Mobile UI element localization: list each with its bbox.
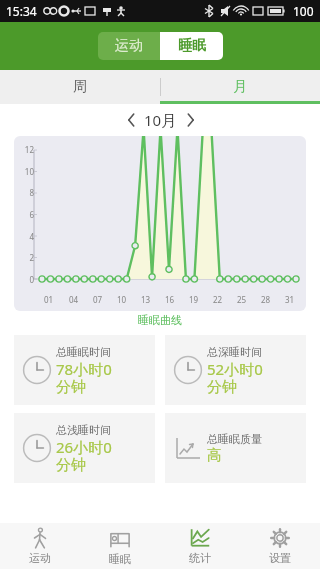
staticText: 15:34: [6, 3, 37, 19]
staticText: 总深睡时间: [207, 345, 262, 359]
staticText: 04: [69, 294, 79, 305]
button[interactable]: Previous month: [118, 107, 144, 133]
button[interactable]: Next month: [177, 107, 203, 133]
staticText: 月: [233, 78, 247, 96]
button[interactable]: 运动: [0, 523, 80, 569]
staticText: 19: [189, 294, 199, 305]
staticText: 22: [213, 294, 223, 305]
staticText: 78小时0 分钟: [56, 359, 112, 396]
button[interactable]: 总深睡时间: [165, 335, 306, 405]
staticText: 0: [14, 274, 34, 285]
button[interactable]: 总浅睡时间: [14, 413, 155, 483]
staticText: 13: [141, 294, 151, 305]
staticText: 4: [14, 231, 34, 242]
staticText: 10月: [144, 110, 177, 130]
staticText: 高: [207, 446, 222, 465]
staticText: 16: [165, 294, 175, 305]
button[interactable]: 统计: [160, 523, 240, 569]
staticText: 01: [44, 294, 54, 305]
staticText: 运动: [29, 551, 51, 565]
staticText: 统计: [189, 551, 211, 565]
button[interactable]: 设置: [240, 523, 320, 569]
staticText: 100: [293, 3, 314, 19]
staticText: 07: [93, 294, 103, 305]
staticText: 12: [14, 144, 34, 155]
staticText: 总睡眠时间: [56, 345, 111, 359]
button[interactable]: 总睡眠时间: [14, 335, 155, 405]
staticText: 睡眠: [109, 552, 131, 566]
staticText: 10: [14, 166, 34, 177]
staticText: 28: [261, 294, 271, 305]
staticText: 总睡眠质量: [207, 432, 262, 446]
staticText: 2: [14, 252, 34, 263]
button[interactable]: 总睡眠质量: [165, 413, 306, 483]
staticText: 31: [285, 294, 295, 305]
staticText: 52小时0 分钟: [207, 359, 263, 396]
staticText: 25: [237, 294, 247, 305]
staticText: 设置: [269, 551, 291, 565]
button[interactable]: 运动: [98, 32, 160, 60]
staticText: 运动: [115, 37, 143, 55]
staticText: 总浅睡时间: [56, 423, 111, 437]
staticText: 26小时0 分钟: [56, 437, 112, 474]
button[interactable]: 睡眠: [80, 523, 160, 569]
button[interactable]: 月: [160, 70, 320, 104]
staticText: 10: [117, 294, 127, 305]
staticText: 睡眠: [178, 37, 206, 55]
staticText: 6: [14, 209, 34, 220]
staticText: 8: [14, 187, 34, 198]
staticText: 睡眠曲线: [0, 313, 320, 327]
button[interactable]: 周: [0, 70, 160, 104]
staticText: 周: [73, 78, 87, 96]
button[interactable]: 睡眠: [160, 32, 223, 60]
